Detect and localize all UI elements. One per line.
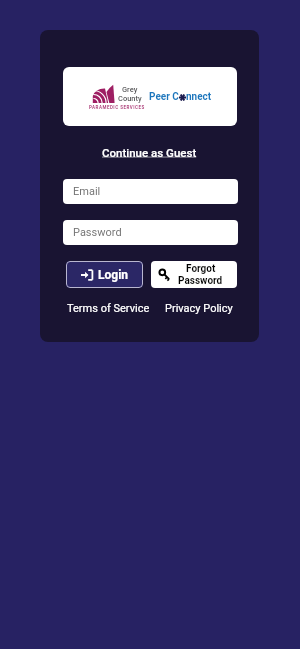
button[interactable]: Login — [66, 261, 143, 288]
staticText: Email — [73, 185, 101, 198]
button[interactable]: Password — [63, 220, 238, 245]
button[interactable]: Privacy Policy — [165, 302, 233, 315]
staticText: Login — [98, 268, 129, 282]
staticText: PARAMEDIC SERVICES — [89, 105, 145, 110]
staticText: Forgot — [186, 263, 216, 275]
staticText: Peer C — [149, 91, 179, 103]
staticText: Continue as Guest — [102, 146, 197, 159]
button[interactable]: Continue as Guest — [40, 146, 259, 159]
staticText: Password — [73, 226, 122, 239]
button[interactable]: Terms of Service — [67, 302, 150, 315]
staticText: Grey — [122, 85, 138, 94]
staticText: County — [118, 94, 142, 103]
staticText: nnect — [186, 91, 212, 103]
button[interactable]: Forgot — [151, 261, 237, 288]
staticText: Password — [178, 275, 223, 287]
button[interactable]: Email — [63, 179, 238, 204]
